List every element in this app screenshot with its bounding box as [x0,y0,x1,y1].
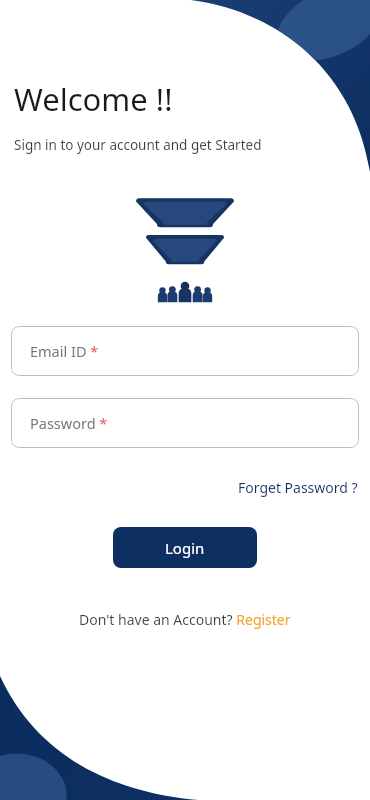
staticText: Welcome !! [14,78,173,120]
staticText: Don't have an Account? Register [79,610,291,629]
button[interactable]: Password * [11,398,359,448]
button[interactable]: Login [113,527,257,568]
button[interactable]: Forget Password ? [226,474,370,501]
button[interactable]: Don't have an Account? Register [71,606,299,633]
staticText: Login [165,538,205,558]
button[interactable]: Email ID * [11,326,359,376]
staticText: Forget Password ? [238,478,358,497]
staticText: Sign in to your account and get Started [14,136,262,154]
staticText: Email ID * [30,341,99,361]
staticText: Password * [30,413,108,433]
